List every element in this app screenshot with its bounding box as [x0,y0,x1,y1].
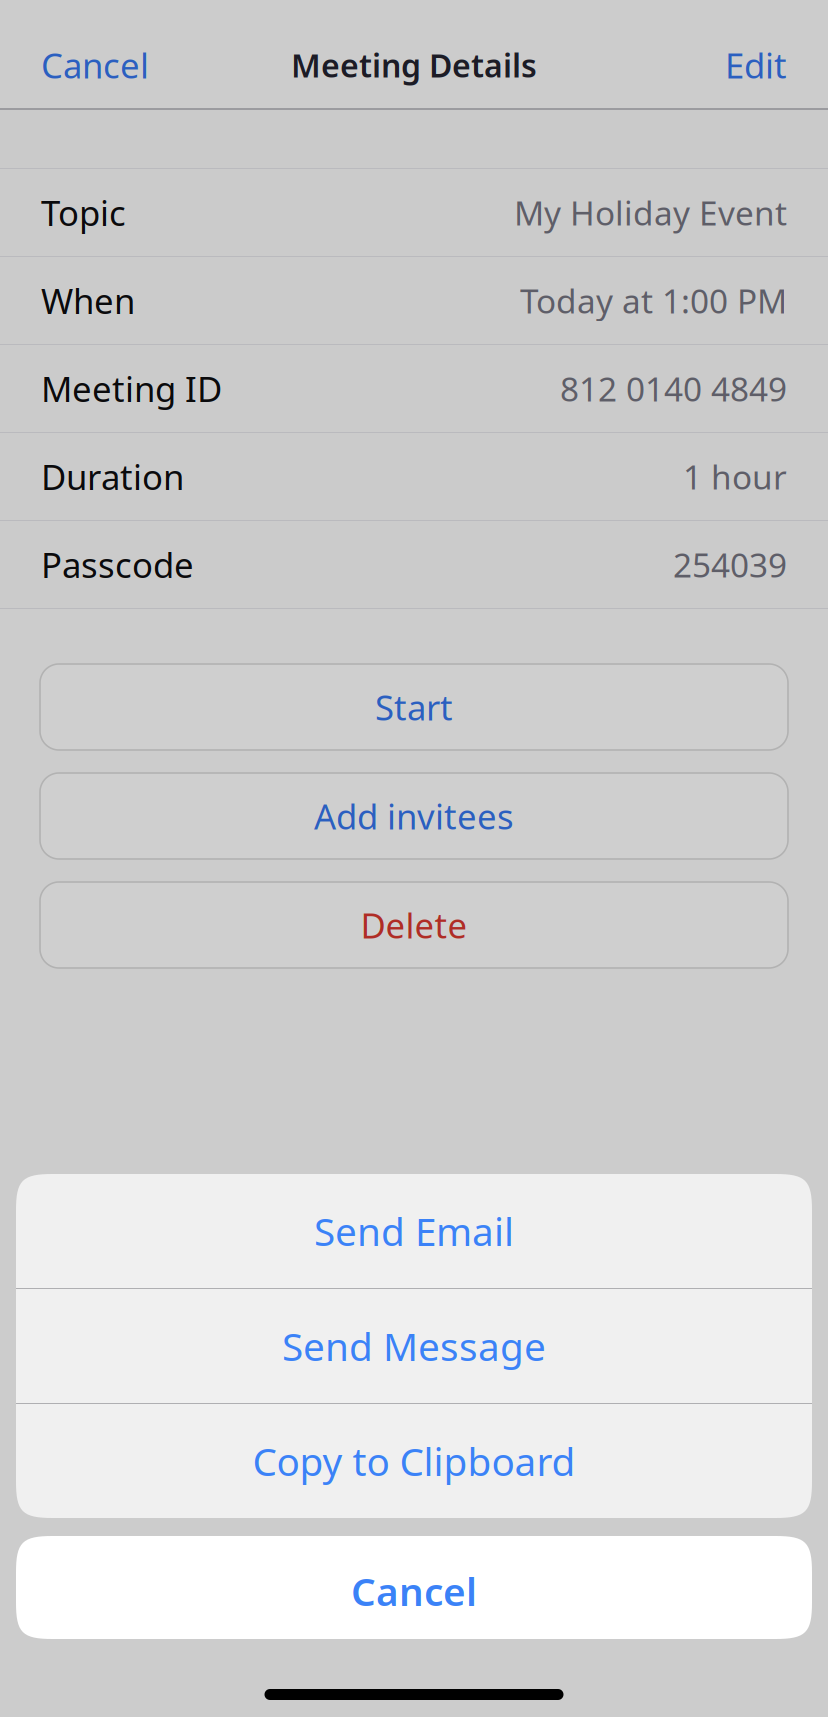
staticText: Send Email [314,1205,514,1257]
staticText: Send Message [282,1320,546,1372]
staticText: 254039 [673,542,787,587]
staticText: My Holiday Event [514,190,787,235]
staticText: Meeting Details [291,44,537,86]
staticText: Delete [360,902,467,948]
staticText: When [41,277,135,323]
staticText: Meeting ID [41,365,222,411]
button[interactable]: Cancel [41,30,163,100]
staticText: Add invitees [314,793,514,839]
button[interactable]: Cancel [16,1536,812,1639]
staticText: Today at 1:00 PM [520,278,787,323]
staticText: Cancel [41,42,149,88]
staticText: 812 0140 4849 [560,366,787,411]
staticText: Copy to Clipboard [252,1435,575,1487]
button[interactable]: Start [40,664,788,750]
button[interactable]: Add invitees [40,773,788,859]
button[interactable]: Send Message [16,1289,812,1403]
button[interactable]: Send Email [16,1174,812,1288]
staticText: Topic [41,189,126,235]
staticText: Passcode [41,541,194,587]
staticText: Edit [725,42,787,88]
button[interactable]: Edit [711,30,787,100]
staticText: 1 hour [683,454,787,499]
staticText: Start [375,684,453,730]
button[interactable]: Copy to Clipboard [16,1404,812,1518]
staticText: Duration [41,453,184,499]
staticText: Cancel [351,1565,477,1617]
button[interactable]: Delete [40,882,788,968]
